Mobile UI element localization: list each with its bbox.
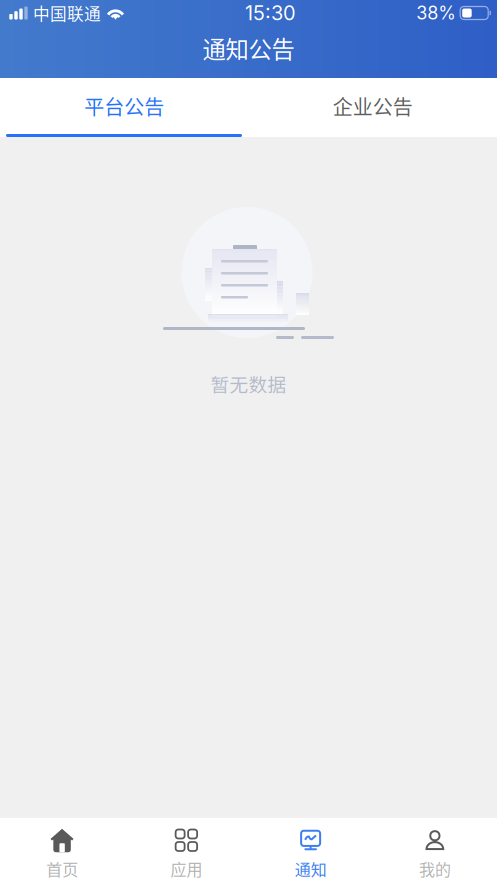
staticText: 中国联通 xyxy=(33,1,101,25)
button[interactable]: 通知 xyxy=(248,817,373,883)
button[interactable]: 平台公告 xyxy=(0,78,248,134)
staticText: 平台公告 xyxy=(84,91,164,120)
staticText: 企业公告 xyxy=(333,91,413,120)
button[interactable]: 企业公告 xyxy=(248,78,497,134)
staticText: 通知 xyxy=(295,857,327,880)
staticText: 首页 xyxy=(46,857,78,880)
staticText: 15:30 xyxy=(245,1,296,25)
button[interactable]: 首页 xyxy=(0,817,124,883)
staticText: 通知公告 xyxy=(202,31,294,65)
button[interactable]: 应用 xyxy=(124,817,248,883)
staticText: 38% xyxy=(416,2,456,24)
staticText: 应用 xyxy=(170,857,202,880)
button[interactable]: 我的 xyxy=(373,817,497,883)
staticText: 暂无数据 xyxy=(210,370,286,397)
staticText: 我的 xyxy=(419,857,451,880)
